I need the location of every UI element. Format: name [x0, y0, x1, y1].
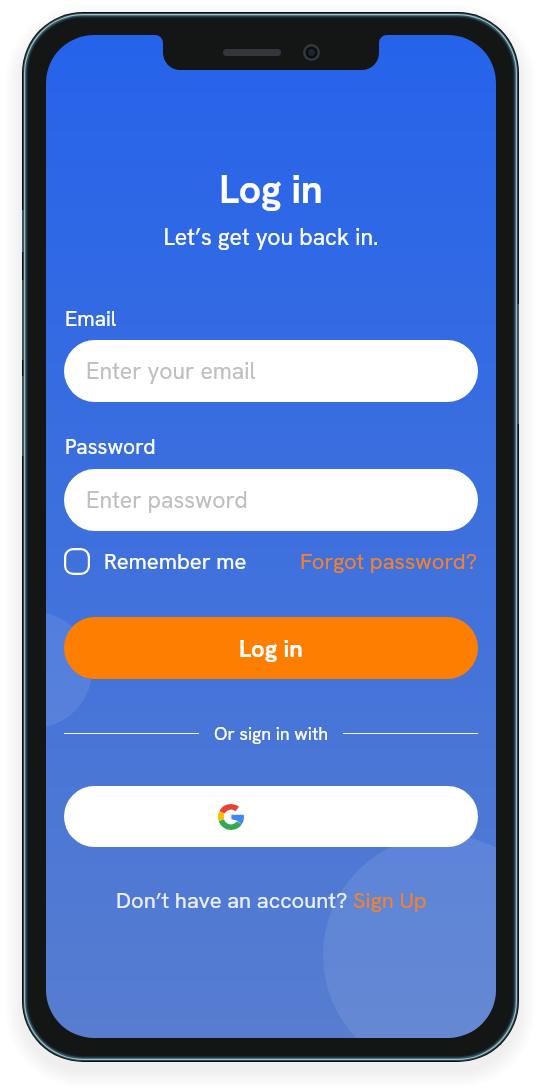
staticText: Enter your email [86, 356, 256, 386]
staticText: Let’s get you back in. [64, 222, 478, 252]
button[interactable]: Log in [64, 617, 478, 679]
staticText: Email [65, 305, 117, 332]
button[interactable]: Remember me [64, 547, 247, 576]
staticText: Remember me [104, 547, 247, 576]
button[interactable]: Forgot password? [300, 547, 478, 576]
button[interactable]: Enter your email [64, 340, 478, 402]
staticText: Password [65, 433, 156, 460]
staticText: Don’t have an account? [116, 886, 353, 915]
button[interactable]: Enter password [64, 469, 478, 531]
staticText: Or sign in with [214, 722, 328, 744]
staticText: Enter password [86, 485, 248, 515]
staticText: Log in [64, 164, 478, 215]
button[interactable]: Sign Up [353, 886, 427, 915]
staticText: Log in [239, 633, 303, 664]
button[interactable]: Sign in with Google [64, 786, 478, 847]
